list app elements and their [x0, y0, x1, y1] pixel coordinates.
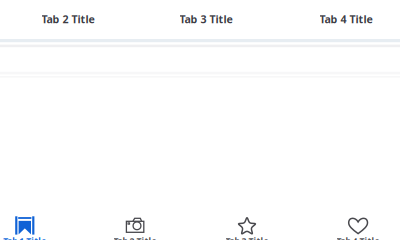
button[interactable]: Tab 1 Title	[0, 206, 75, 240]
staticText: Tab 4 Title	[337, 235, 380, 240]
button[interactable]: Tab 4 Title	[281, 0, 400, 39]
staticText: Tab 1 Title	[3, 235, 46, 240]
button[interactable]: Tab 2 Title	[3, 0, 133, 39]
staticText: Tab 4 Title	[319, 12, 372, 26]
staticText: Tab 3 Title	[179, 12, 232, 26]
button[interactable]: Tab 3 Title	[197, 206, 297, 240]
staticText: Tab 2 Title	[41, 12, 94, 26]
button[interactable]: Tab 3 Title	[141, 0, 271, 39]
staticText: Tab 2 Title	[113, 235, 156, 240]
button[interactable]: Tab 4 Title	[308, 206, 400, 240]
staticText: Tab 3 Title	[225, 235, 268, 240]
button[interactable]: Tab 2 Title	[85, 206, 185, 240]
